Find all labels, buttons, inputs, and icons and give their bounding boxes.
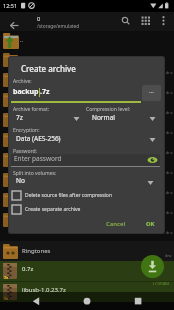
staticText: /storage/emulated bbox=[37, 23, 80, 30]
button[interactable]: 7z bbox=[0, 261, 174, 281]
button[interactable]: Ringtones bbox=[0, 241, 174, 261]
button[interactable]: Normal bbox=[89, 113, 159, 124]
staticText: dr-x bbox=[166, 130, 173, 135]
staticText: 12:51 bbox=[3, 2, 18, 9]
staticText: Archive format: bbox=[13, 106, 50, 113]
button[interactable]: OK bbox=[139, 217, 161, 231]
button[interactable]: backup bbox=[13, 87, 50, 97]
button[interactable] bbox=[79, 293, 95, 309]
staticText: Archive: bbox=[13, 78, 32, 85]
staticText: Encryption: bbox=[13, 127, 40, 134]
staticText: 7z bbox=[16, 113, 23, 122]
staticText: Compression level: bbox=[86, 106, 131, 113]
button[interactable]: Cancel bbox=[99, 217, 132, 231]
staticText: .7z bbox=[40, 87, 50, 97]
button[interactable] bbox=[147, 156, 158, 164]
staticText: dr-x bbox=[166, 70, 173, 75]
staticText: Enter password bbox=[14, 154, 62, 163]
staticText: Split into volumes: bbox=[13, 170, 57, 177]
staticText: 175/080 bbox=[152, 280, 170, 286]
button[interactable] bbox=[8, 20, 20, 31]
staticText: libusb-1.0.23.7z bbox=[22, 286, 66, 294]
button[interactable]: 7z bbox=[0, 282, 174, 302]
button[interactable] bbox=[158, 15, 169, 26]
staticText: dr-x bbox=[166, 170, 173, 175]
staticText: OK bbox=[146, 220, 155, 228]
button[interactable] bbox=[28, 293, 44, 309]
staticText: Ringtones bbox=[22, 247, 51, 255]
staticText: No bbox=[16, 176, 25, 185]
staticText: Create archive bbox=[21, 63, 76, 74]
button[interactable] bbox=[140, 15, 153, 28]
button[interactable] bbox=[141, 255, 164, 278]
button[interactable]: Create separate archive bbox=[12, 205, 81, 214]
button[interactable]: .. bbox=[0, 31, 174, 51]
staticText: .. bbox=[20, 36, 24, 44]
staticText: 0 bbox=[37, 15, 41, 22]
button[interactable]: Enter password bbox=[13, 154, 159, 165]
staticText: dr-x bbox=[166, 210, 173, 215]
button[interactable] bbox=[119, 15, 132, 28]
staticText: 0.7z bbox=[22, 265, 34, 273]
staticText: dr-x bbox=[166, 190, 173, 195]
staticText: drw bbox=[165, 253, 172, 258]
staticText: dr-x bbox=[166, 150, 173, 155]
staticText: Create separate archive bbox=[25, 206, 81, 213]
staticText: Cancel bbox=[106, 220, 126, 228]
staticText: ... bbox=[149, 87, 154, 95]
button[interactable]: ... bbox=[142, 85, 161, 101]
button[interactable]: Delete source files after compression bbox=[12, 191, 112, 200]
staticText: Data (AES-256) bbox=[16, 134, 61, 143]
staticText: 7z bbox=[4, 296, 9, 301]
button[interactable]: Data (AES-256) bbox=[13, 134, 159, 145]
staticText: Normal bbox=[92, 113, 115, 122]
staticText: dr-x bbox=[166, 230, 173, 235]
button[interactable]: 7z bbox=[13, 113, 83, 124]
button[interactable] bbox=[130, 293, 146, 309]
staticText: Password: bbox=[13, 148, 37, 155]
button[interactable]: No bbox=[13, 176, 159, 187]
staticText: Delete source files after compression bbox=[25, 192, 112, 199]
staticText: dr-x bbox=[166, 90, 173, 95]
staticText: backup bbox=[13, 87, 39, 97]
staticText: dr-x bbox=[166, 110, 173, 115]
staticText: 7z bbox=[4, 275, 9, 280]
